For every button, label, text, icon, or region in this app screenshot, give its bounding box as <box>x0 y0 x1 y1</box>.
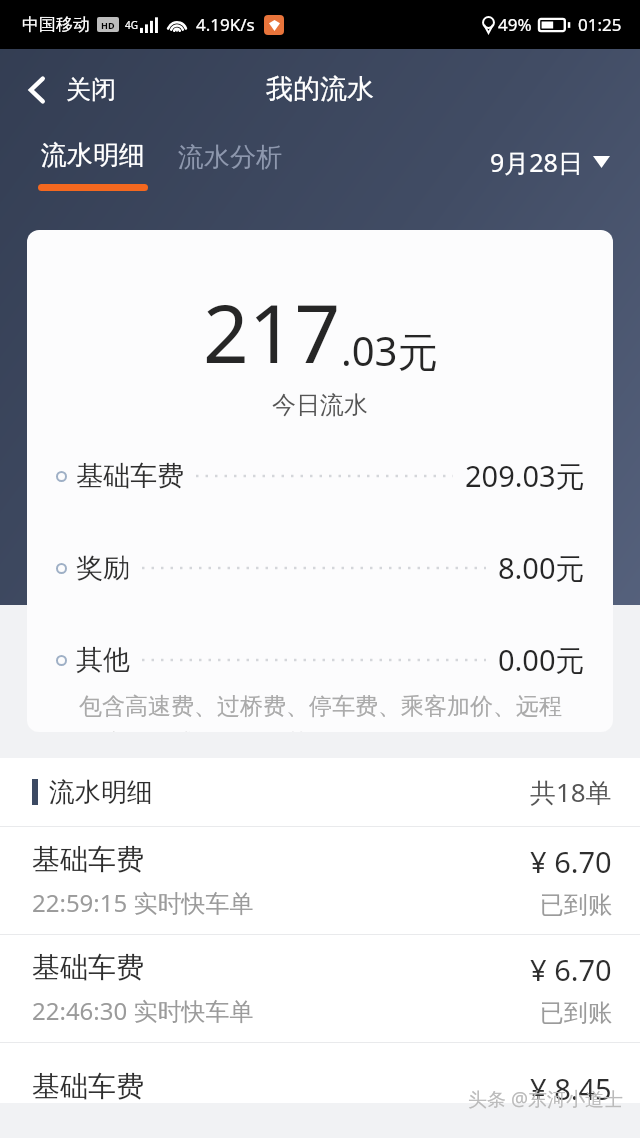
button[interactable]: 217 <box>27 230 613 732</box>
staticText: 217 <box>203 277 341 386</box>
staticText: 基础车费 <box>32 950 144 985</box>
staticText: HD <box>101 19 115 31</box>
staticText: 头条 @东河小道士 <box>468 1086 624 1112</box>
staticText: 9月28日 <box>490 145 583 179</box>
button[interactable]: 基础车费 <box>0 827 640 934</box>
staticText: 0.00元 <box>498 640 585 680</box>
staticText: 共18单 <box>530 774 612 810</box>
staticText: ¥ 6.70 <box>530 842 612 881</box>
button[interactable]: 基础车费 <box>0 935 640 1042</box>
staticText: 49% <box>498 13 532 36</box>
button[interactable]: 流水明细 <box>38 139 148 191</box>
staticText: 已到账 <box>540 890 612 920</box>
button[interactable]: 流水分析 <box>178 139 282 174</box>
other: Back <box>28 75 46 105</box>
staticText: 8.00元 <box>498 548 585 588</box>
staticText: 已到账 <box>540 998 612 1028</box>
staticText: 基础车费 <box>76 459 184 493</box>
button[interactable]: Back <box>0 66 130 113</box>
staticText: 22:59:15 实时快车单 <box>32 886 254 919</box>
staticText: 基础车费 <box>32 1069 144 1103</box>
staticText: ¥ 6.70 <box>530 950 612 989</box>
staticText: 中国移动 <box>22 14 90 35</box>
staticText: 其他 <box>76 643 130 677</box>
button[interactable]: 流水明细 <box>0 758 640 826</box>
staticText: 包含高速费、过桥费、停车费、乘客加价、远程 <box>79 692 562 721</box>
button[interactable]: 9月28日 <box>486 141 614 183</box>
staticText: 4G <box>125 18 138 32</box>
staticText: 4.19K/s <box>196 13 255 36</box>
staticText: 奖励 <box>76 551 130 585</box>
staticText: 今日流水 <box>272 390 368 420</box>
staticText: 流水明细 <box>41 139 145 172</box>
staticText: 流水明细 <box>49 776 153 809</box>
staticText: 22:46:30 实时快车单 <box>32 994 254 1027</box>
staticText: 209.03元 <box>465 456 585 496</box>
staticText: 关闭 <box>66 74 116 105</box>
staticText: ¥ 8.45 <box>530 1069 612 1103</box>
staticText: 我的流水 <box>266 72 374 106</box>
staticText: 01:25 <box>578 13 622 36</box>
staticText: 基础车费 <box>32 842 144 877</box>
staticText: .03元 <box>341 323 438 378</box>
